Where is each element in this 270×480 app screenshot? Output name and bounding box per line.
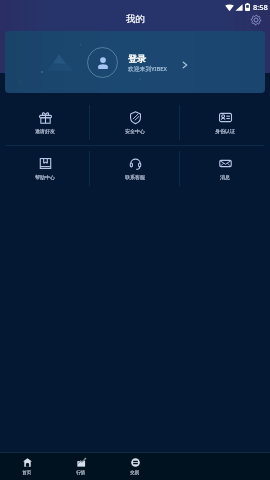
staticText: 欢迎来到YIBEX <box>128 65 167 73</box>
staticText: 行情 <box>76 470 86 476</box>
staticText: 登录 <box>128 53 146 64</box>
button[interactable]: 邀请好友 <box>0 100 90 145</box>
button[interactable]: 行情 <box>54 453 108 480</box>
staticText: 邀请好友 <box>35 128 55 134</box>
staticText: 交易 <box>130 470 140 476</box>
staticText: 联系客服 <box>125 174 145 180</box>
button[interactable]: 消息 <box>180 146 270 191</box>
button[interactable]: 联系客服 <box>90 146 180 191</box>
button[interactable]: 身份认证 <box>180 100 270 145</box>
button[interactable]: 安全中心 <box>90 100 180 145</box>
button[interactable]: Settings <box>249 13 263 27</box>
button[interactable]: 首页 <box>0 453 54 480</box>
staticText: 8:58 <box>253 2 268 12</box>
staticText: 身份认证 <box>215 128 235 134</box>
button[interactable]: 登录 <box>5 31 265 93</box>
staticText: 帮助中心 <box>35 174 55 180</box>
staticText: 安全中心 <box>125 128 145 134</box>
staticText: 我的 <box>126 13 145 25</box>
button[interactable]: 帮助中心 <box>0 146 90 191</box>
staticText: 消息 <box>220 174 230 180</box>
button[interactable]: 交易 <box>108 453 162 480</box>
staticText: 首页 <box>22 470 32 476</box>
